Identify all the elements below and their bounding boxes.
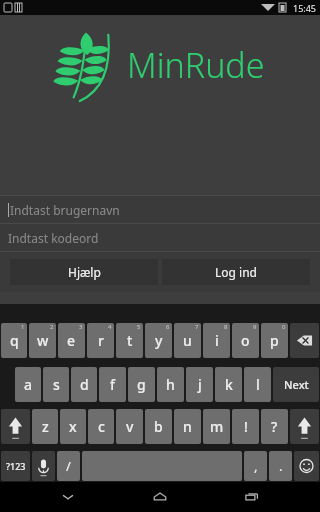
- staticText: n: [183, 417, 192, 436]
- staticText: 2: [50, 323, 54, 331]
- staticText: h: [166, 375, 175, 394]
- staticText: g: [137, 375, 146, 394]
- staticText: j: [198, 375, 202, 394]
- staticText: r: [98, 331, 104, 350]
- staticText: 8: [224, 323, 228, 331]
- staticText: Log ind: [215, 264, 257, 280]
- staticText: y: [155, 331, 163, 350]
- button[interactable]: o: [232, 323, 259, 358]
- staticText: 7: [195, 323, 199, 331]
- staticText: Indtast kodeord: [8, 230, 99, 246]
- staticText: ,: [254, 457, 258, 475]
- button[interactable]: .: [269, 451, 292, 481]
- button[interactable]: t: [116, 323, 143, 358]
- button[interactable]: i: [203, 323, 230, 358]
- staticText: 5: [137, 323, 141, 331]
- staticText: f: [110, 375, 115, 394]
- button[interactable]: ?123: [1, 451, 30, 481]
- button[interactable]: Hjælp: [10, 259, 158, 285]
- button[interactable]: u: [174, 323, 201, 358]
- staticText: z: [42, 417, 49, 436]
- staticText: Hjælp: [68, 264, 101, 280]
- staticText: 15:45: [293, 2, 317, 14]
- staticText: m: [210, 417, 224, 436]
- staticText: !: [244, 417, 248, 436]
- button[interactable]: c: [88, 409, 114, 444]
- staticText: s: [53, 375, 60, 394]
- button[interactable]: f: [99, 367, 126, 402]
- button[interactable]: g: [128, 367, 155, 402]
- button[interactable]: s: [43, 367, 69, 402]
- button[interactable]: Recent apps: [228, 482, 276, 512]
- staticText: 6: [166, 323, 170, 331]
- button[interactable]: k: [215, 367, 242, 402]
- button[interactable]: Delete: [290, 323, 319, 358]
- button[interactable]: l: [244, 367, 271, 402]
- button[interactable]: !: [232, 409, 259, 444]
- staticText: Indtast brugernavn: [10, 202, 120, 218]
- staticText: a: [24, 375, 33, 394]
- staticText: d: [80, 375, 89, 394]
- staticText: x: [69, 417, 77, 436]
- staticText: o: [241, 331, 250, 350]
- staticText: ?123: [6, 460, 26, 472]
- staticText: 4: [108, 323, 112, 331]
- staticText: 0: [282, 323, 286, 331]
- button[interactable]: Home: [136, 482, 184, 512]
- staticText: p: [270, 331, 279, 350]
- button[interactable]: ?: [261, 409, 288, 444]
- staticText: t: [127, 331, 133, 350]
- staticText: q: [10, 331, 19, 350]
- button[interactable]: n: [174, 409, 201, 444]
- button[interactable]: j: [186, 367, 213, 402]
- button[interactable]: /: [57, 451, 80, 481]
- staticText: c: [98, 417, 105, 436]
- button[interactable]: Indtast brugernavn: [0, 196, 320, 223]
- button[interactable]: Shift: [290, 409, 319, 444]
- button[interactable]: Shift: [1, 409, 30, 444]
- staticText: MinRude: [127, 42, 265, 88]
- staticText: v: [126, 417, 134, 436]
- button[interactable]: z: [32, 409, 58, 444]
- button[interactable]: Indtast kodeord: [0, 224, 320, 251]
- staticText: l: [256, 375, 260, 394]
- staticText: u: [183, 331, 192, 350]
- staticText: /: [66, 457, 71, 475]
- button[interactable]: Voice input: [32, 451, 55, 481]
- button[interactable]: q: [1, 323, 27, 358]
- button[interactable]: h: [157, 367, 184, 402]
- staticText: w: [37, 331, 49, 350]
- button[interactable]: d: [71, 367, 97, 402]
- button[interactable]: w: [29, 323, 56, 358]
- button[interactable]: p: [261, 323, 288, 358]
- button[interactable]: y: [145, 323, 172, 358]
- staticText: 3: [79, 323, 83, 331]
- button[interactable]: b: [145, 409, 172, 444]
- staticText: .: [279, 457, 283, 475]
- staticText: ?: [271, 417, 278, 436]
- staticText: b: [154, 417, 163, 436]
- button[interactable]: Log ind: [162, 259, 310, 285]
- button[interactable]: Emoji: [294, 451, 319, 481]
- staticText: i: [215, 331, 219, 350]
- button[interactable]: ,: [244, 451, 267, 481]
- button[interactable]: Next: [273, 367, 319, 402]
- button[interactable]: a: [15, 367, 41, 402]
- staticText: k: [225, 375, 233, 394]
- button[interactable]: v: [116, 409, 143, 444]
- staticText: Next: [284, 377, 309, 392]
- button[interactable]: r: [87, 323, 114, 358]
- staticText: 9: [253, 323, 257, 331]
- staticText: e: [67, 331, 76, 350]
- button[interactable]: Hide keyboard: [44, 482, 92, 512]
- staticText: 1: [21, 323, 25, 331]
- button[interactable]: e: [58, 323, 85, 358]
- button[interactable]: x: [60, 409, 86, 444]
- button[interactable]: m: [203, 409, 230, 444]
